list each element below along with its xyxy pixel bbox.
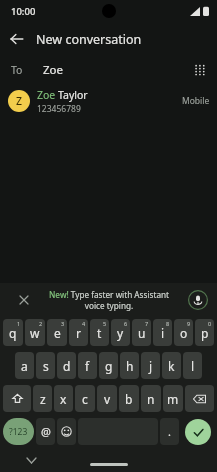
button[interactable]: @ — [36, 418, 55, 445]
staticText: a — [21, 358, 28, 374]
button[interactable]: Back — [0, 22, 34, 56]
staticText: h — [126, 358, 134, 374]
staticText: i — [161, 325, 165, 341]
staticText: s — [43, 358, 49, 374]
staticText: 1 — [17, 320, 21, 327]
staticText: d — [63, 358, 71, 374]
button[interactable]: p — [195, 319, 214, 346]
staticText: 123456789 — [37, 103, 81, 115]
staticText: f — [85, 358, 90, 374]
staticText: z — [40, 391, 46, 407]
staticText: l — [191, 358, 195, 374]
button[interactable]: m — [163, 385, 183, 412]
staticText: New conversation — [36, 31, 142, 48]
button[interactable]: r — [69, 319, 88, 346]
button[interactable]: Dismiss — [16, 292, 32, 308]
staticText: n — [147, 391, 155, 407]
staticText: c — [82, 391, 88, 407]
staticText: To — [11, 63, 23, 77]
button[interactable]: b — [119, 385, 139, 412]
button[interactable]: Voice typing — [188, 290, 208, 310]
button[interactable]: x — [54, 385, 73, 412]
staticText: 8 — [166, 320, 170, 327]
staticText: New! Type faster with Assistant voice ty… — [44, 289, 174, 311]
staticText: q — [9, 325, 17, 341]
button[interactable]: . — [160, 418, 179, 445]
button[interactable]: w — [25, 319, 45, 346]
button[interactable]: Dialpad — [186, 56, 214, 84]
staticText: y — [117, 325, 124, 341]
button[interactable]: j — [141, 352, 160, 379]
button[interactable]: Z — [0, 84, 217, 118]
button[interactable]: f — [78, 352, 97, 379]
staticText: 7 — [145, 320, 149, 327]
button[interactable]: i — [153, 319, 172, 346]
button[interactable]: Hide keyboard — [22, 451, 40, 469]
staticText: u — [138, 325, 146, 341]
button[interactable]: o — [174, 319, 193, 346]
staticText: 6 — [124, 320, 128, 327]
staticText: j — [149, 358, 153, 374]
staticText: v — [104, 391, 111, 407]
button[interactable]: e — [47, 319, 67, 346]
button[interactable]: q — [3, 319, 23, 346]
button[interactable]: h — [120, 352, 139, 379]
staticText: 9 — [187, 320, 191, 327]
button[interactable]: a — [15, 352, 34, 379]
staticText: 10:00 — [11, 5, 36, 18]
staticText: 3 — [61, 320, 65, 327]
button[interactable]: s — [36, 352, 55, 379]
staticText: r — [76, 325, 81, 341]
staticText: w — [30, 325, 40, 341]
staticText: Z — [16, 94, 23, 108]
button[interactable]: u — [132, 319, 151, 346]
button[interactable]: ?123 — [3, 418, 34, 445]
staticText: o — [180, 325, 188, 341]
staticText: m — [167, 391, 179, 407]
staticText: x — [60, 391, 67, 407]
button[interactable]: g — [99, 352, 118, 379]
button[interactable]: k — [162, 352, 181, 379]
button[interactable]: c — [75, 385, 95, 412]
button[interactable]: y — [111, 319, 130, 346]
button[interactable]: t — [90, 319, 109, 346]
staticText: Zoe — [43, 62, 64, 78]
staticText: ?123 — [9, 426, 28, 438]
staticText: b — [125, 391, 133, 407]
staticText: g — [105, 358, 113, 374]
staticText: 0 — [208, 320, 212, 327]
staticText: t — [97, 325, 102, 341]
button[interactable]: z — [33, 385, 52, 412]
staticText: @ — [41, 424, 51, 439]
staticText: Zoe Taylor — [37, 88, 88, 102]
button[interactable]: d — [57, 352, 76, 379]
button[interactable]: v — [97, 385, 117, 412]
button[interactable]: l — [183, 352, 202, 379]
staticText: . — [168, 424, 171, 439]
button[interactable]: n — [141, 385, 161, 412]
button[interactable]: Backspace — [185, 385, 214, 412]
staticText: 4 — [82, 320, 86, 327]
staticText: p — [201, 325, 209, 341]
staticText: 2 — [39, 320, 43, 327]
button[interactable]: Send — [185, 419, 211, 445]
staticText: e — [54, 325, 61, 341]
staticText: k — [168, 358, 175, 374]
staticText: Mobile — [182, 95, 210, 107]
staticText: 5 — [103, 320, 107, 327]
button[interactable]: Emoji — [57, 418, 76, 445]
button[interactable]: Shift — [3, 385, 31, 412]
